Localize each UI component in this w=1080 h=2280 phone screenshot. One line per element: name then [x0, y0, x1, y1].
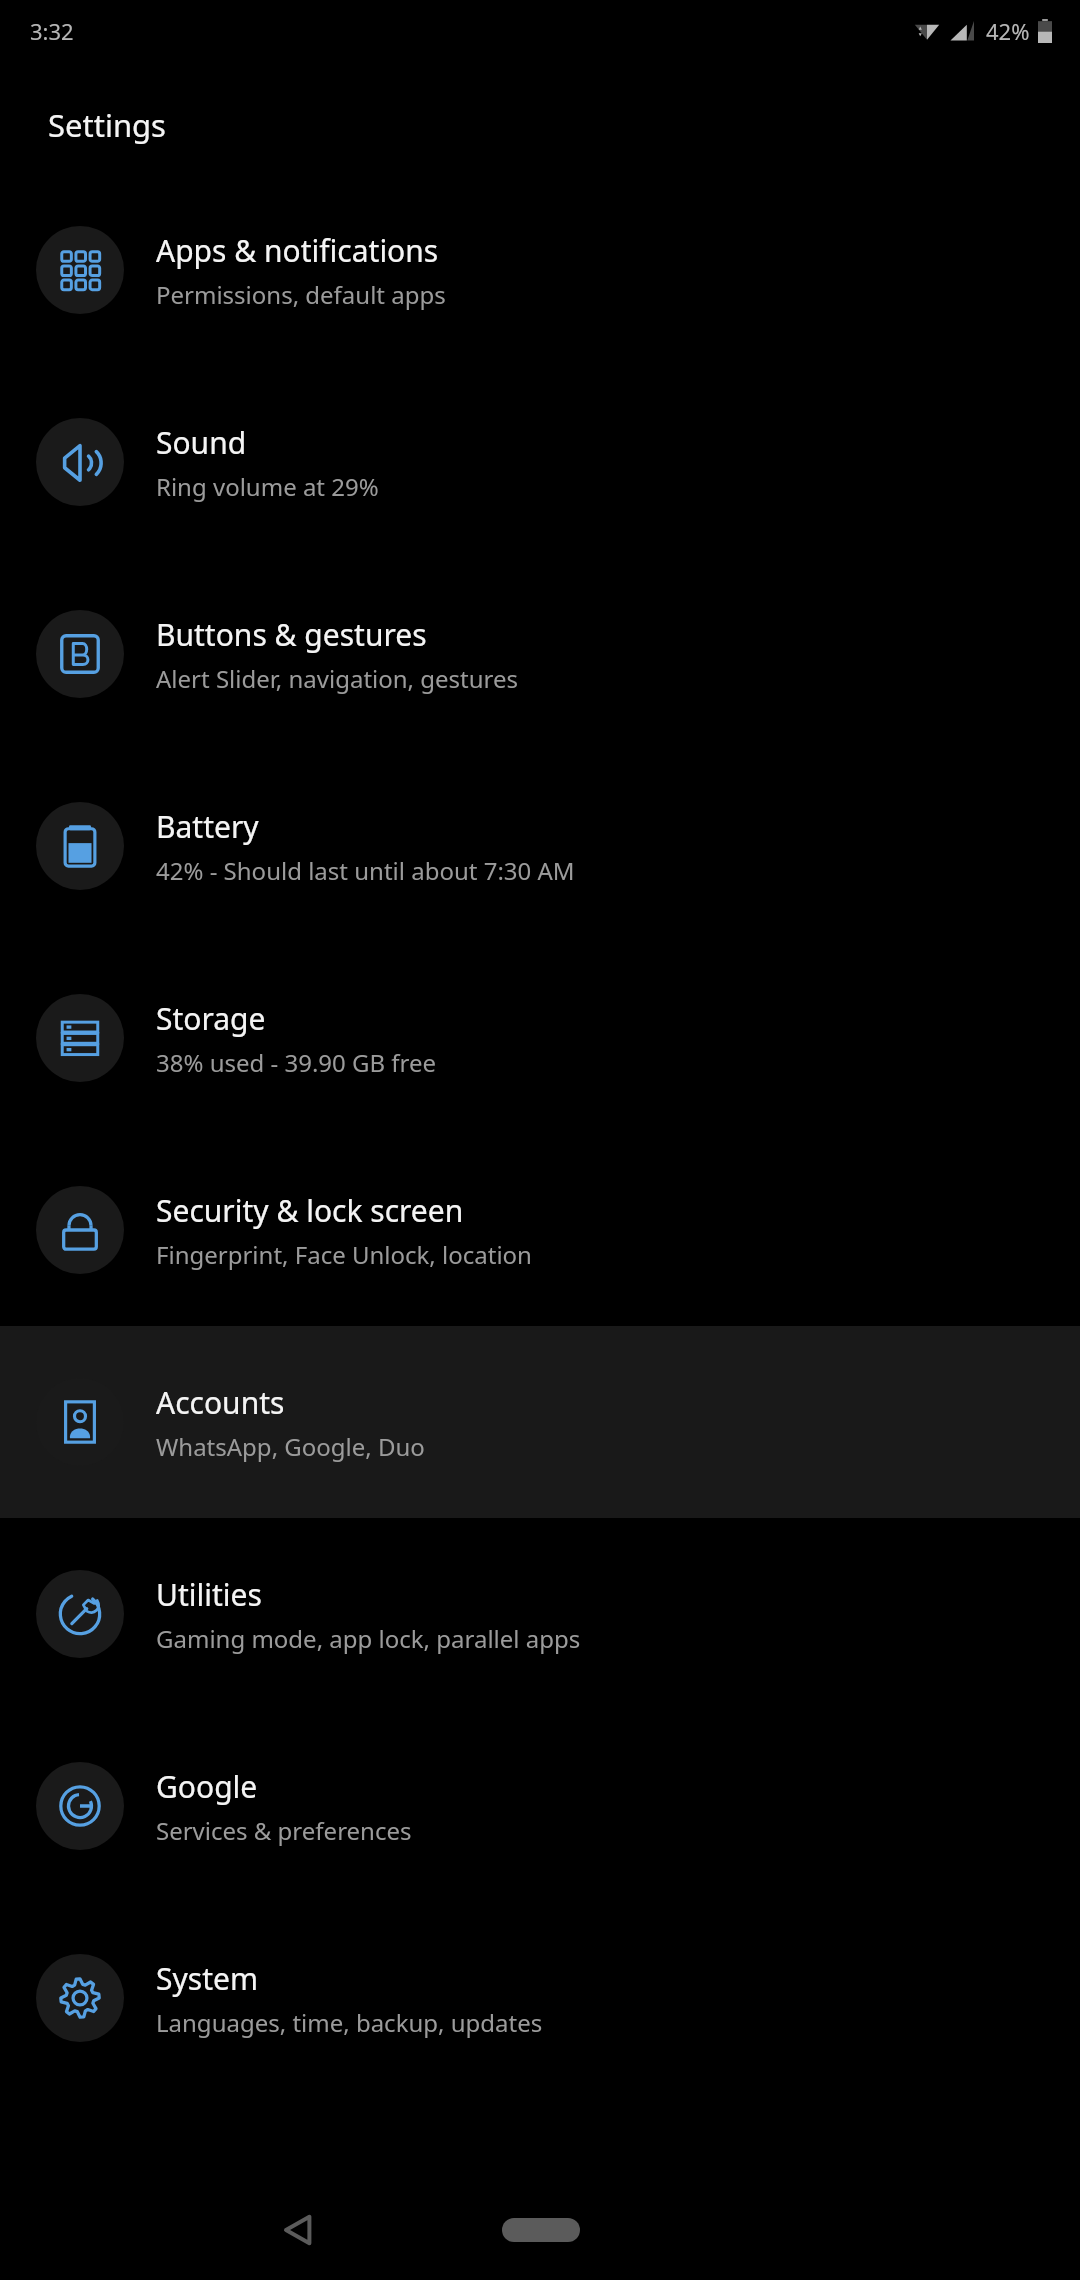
button[interactable]: Back — [262, 2194, 334, 2266]
staticText: Ring volume at 29% — [156, 470, 379, 503]
staticText: System — [156, 1958, 258, 1999]
staticText: Battery — [156, 806, 259, 847]
staticText: Accounts — [156, 1382, 285, 1423]
staticText: Settings — [48, 104, 166, 146]
button[interactable]: Utilities — [0, 1518, 1080, 1710]
button[interactable]: Buttons & gestures — [0, 558, 1080, 750]
staticText: 42% — [986, 16, 1030, 46]
staticText: 3:32 — [30, 16, 74, 46]
staticText: Permissions, default apps — [156, 278, 446, 311]
staticText: Gaming mode, app lock, parallel apps — [156, 1622, 581, 1655]
staticText: Buttons & gestures — [156, 614, 427, 655]
staticText: Fingerprint, Face Unlock, location — [156, 1238, 532, 1271]
button[interactable]: Sound — [0, 366, 1080, 558]
staticText: Google — [156, 1766, 258, 1807]
staticText: Apps & notifications — [156, 230, 439, 271]
button[interactable]: Security & lock screen — [0, 1134, 1080, 1326]
button[interactable]: Home — [486, 2200, 596, 2260]
staticText: Sound — [156, 422, 247, 463]
button[interactable]: Battery — [0, 750, 1080, 942]
button[interactable]: System — [0, 1902, 1080, 2094]
staticText: 42% - Should last until about 7:30 AM — [156, 854, 575, 887]
staticText: 38% used - 39.90 GB free — [156, 1046, 437, 1079]
button[interactable]: Storage — [0, 942, 1080, 1134]
staticText: WhatsApp, Google, Duo — [156, 1430, 425, 1463]
staticText: Services & preferences — [156, 1814, 412, 1847]
button[interactable]: Accounts — [0, 1326, 1080, 1518]
button[interactable]: Google — [0, 1710, 1080, 1902]
staticText: Security & lock screen — [156, 1190, 464, 1231]
staticText: Storage — [156, 998, 266, 1039]
staticText: Alert Slider, navigation, gestures — [156, 662, 519, 695]
staticText: Languages, time, backup, updates — [156, 2006, 543, 2039]
staticText: Utilities — [156, 1574, 262, 1615]
button[interactable]: Apps & notifications — [0, 174, 1080, 366]
